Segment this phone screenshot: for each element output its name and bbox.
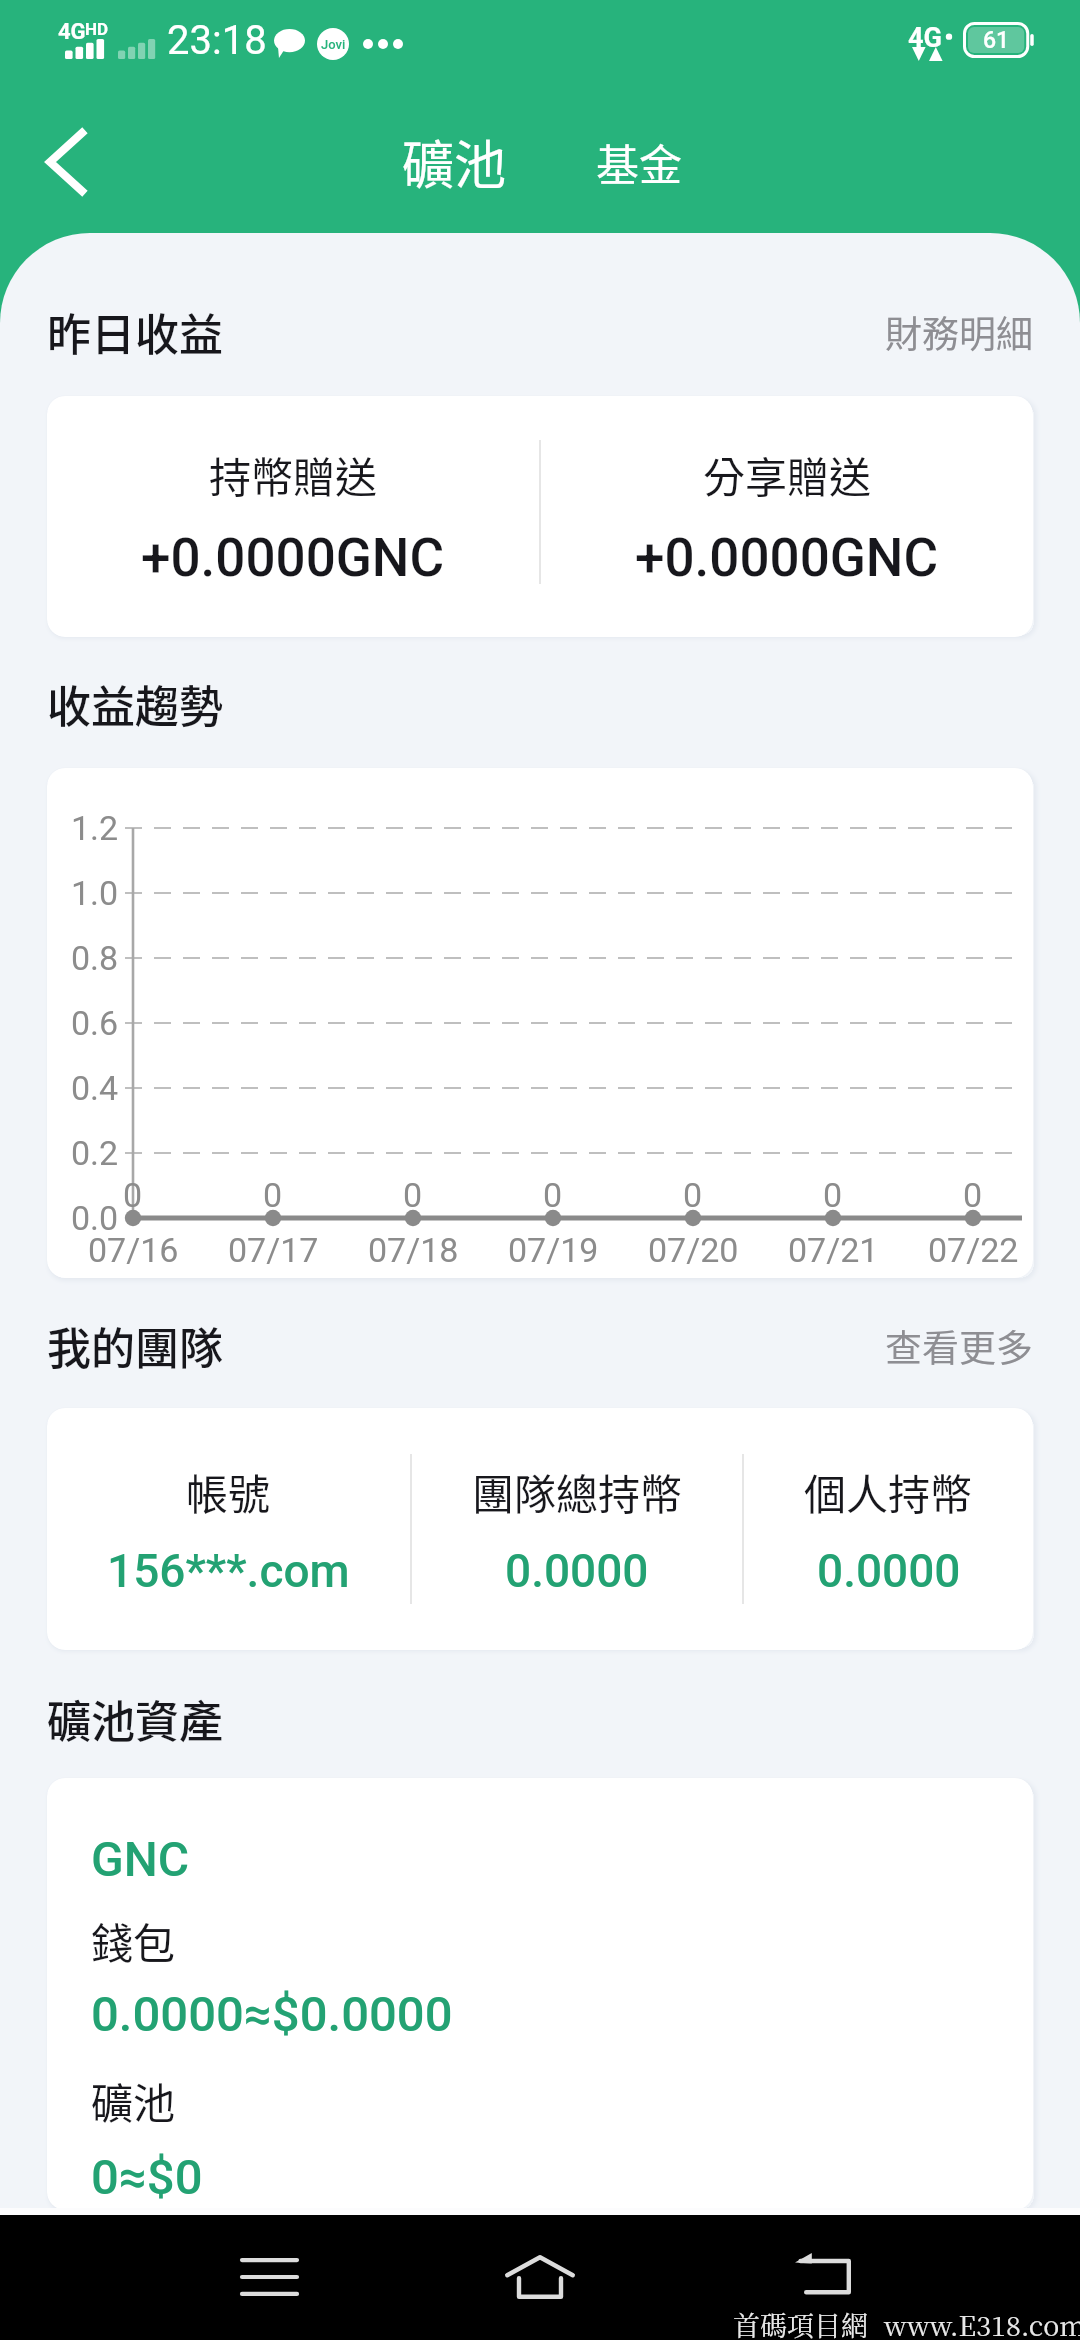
staticText: 0.4 bbox=[71, 1068, 119, 1108]
staticText: 07/18 bbox=[368, 1230, 459, 1270]
staticText: +0.0000GNC bbox=[635, 527, 939, 589]
staticText: 07/19 bbox=[508, 1230, 599, 1270]
staticText: 23:18 bbox=[167, 17, 267, 64]
staticText: 錢包 bbox=[91, 1910, 176, 1971]
staticText: GNC bbox=[91, 1831, 190, 1887]
button[interactable]: 查看更多 bbox=[885, 1313, 1033, 1379]
staticText: 查看更多 bbox=[885, 1319, 1033, 1373]
button[interactable]: 持幣贈送 bbox=[47, 396, 539, 637]
button[interactable]: Menu bbox=[209, 2217, 329, 2337]
staticText: 帳號 bbox=[186, 1461, 271, 1522]
button[interactable]: 分享贈送 bbox=[541, 396, 1033, 637]
staticText: www.E318.com bbox=[884, 2305, 1080, 2340]
button[interactable]: Home bbox=[480, 2217, 600, 2337]
staticText: 0 bbox=[823, 1175, 843, 1215]
staticText: 07/16 bbox=[88, 1230, 179, 1270]
staticText: 07/20 bbox=[648, 1230, 739, 1270]
staticText: 個人持幣 bbox=[804, 1461, 973, 1522]
staticText: 0 bbox=[963, 1175, 983, 1215]
button[interactable]: GNC bbox=[47, 1778, 1033, 2210]
staticText: 昨日收益 bbox=[47, 300, 223, 364]
staticText: HD bbox=[85, 19, 109, 39]
staticText: 0.0000 bbox=[505, 1544, 649, 1598]
button[interactable]: 礦池 bbox=[398, 110, 511, 213]
staticText: 收益趨勢 bbox=[47, 672, 223, 736]
staticText: 0 bbox=[263, 1175, 283, 1215]
staticText: 團隊總持幣 bbox=[472, 1461, 683, 1522]
staticText: 1.2 bbox=[71, 808, 119, 848]
staticText: 0.8 bbox=[71, 938, 119, 978]
staticText: 我的團隊 bbox=[47, 1314, 223, 1378]
staticText: 0.0 bbox=[71, 1198, 119, 1238]
staticText: +0.0000GNC bbox=[141, 527, 445, 589]
staticText: 4G bbox=[58, 19, 86, 45]
staticText: 0 bbox=[683, 1175, 703, 1215]
staticText: 財務明細 bbox=[885, 305, 1033, 359]
staticText: 持幣贈送 bbox=[209, 444, 378, 505]
button[interactable]: Back bbox=[763, 2217, 883, 2337]
staticText: 0.2 bbox=[71, 1133, 119, 1173]
staticText: 礦池 bbox=[402, 124, 507, 199]
staticText: 0 bbox=[123, 1175, 143, 1215]
staticText: 0.6 bbox=[71, 1003, 119, 1043]
staticText: 07/22 bbox=[928, 1230, 1019, 1270]
button[interactable]: 基金 bbox=[592, 117, 686, 207]
staticText: 0 bbox=[403, 1175, 423, 1215]
staticText: 156***.com bbox=[107, 1544, 350, 1598]
staticText: 基金 bbox=[596, 131, 682, 193]
staticText: 礦池 bbox=[91, 2070, 176, 2131]
button[interactable]: 帳號 bbox=[47, 1408, 410, 1650]
staticText: 07/17 bbox=[228, 1230, 319, 1270]
staticText: 4G bbox=[908, 22, 942, 54]
button[interactable]: Back bbox=[18, 114, 114, 210]
staticText: 61 bbox=[983, 27, 1010, 54]
staticText: 礦池資產 bbox=[47, 1687, 223, 1751]
button[interactable]: 個人持幣 bbox=[744, 1408, 1033, 1650]
staticText: 0≈$0 bbox=[91, 2149, 203, 2206]
staticText: 07/21 bbox=[788, 1230, 879, 1270]
staticText: 0 bbox=[543, 1175, 563, 1215]
staticText: 首碼項目網 bbox=[733, 2305, 868, 2340]
staticText: 0.0000 bbox=[817, 1544, 961, 1598]
button[interactable]: 財務明細 bbox=[885, 299, 1033, 365]
staticText: 0.0000≈$0.0000 bbox=[91, 1986, 453, 2043]
staticText: 分享贈送 bbox=[703, 444, 872, 505]
staticText: Jovi bbox=[321, 37, 346, 52]
button[interactable]: 團隊總持幣 bbox=[412, 1408, 742, 1650]
staticText: 1.0 bbox=[71, 873, 119, 913]
